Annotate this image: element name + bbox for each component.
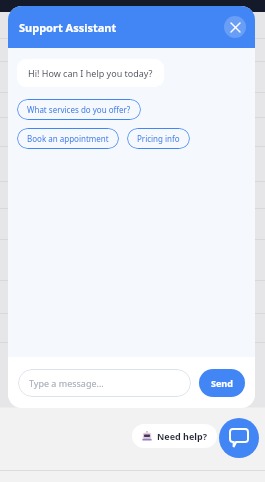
button[interactable]: Close (224, 16, 246, 38)
button[interactable]: Book an appointment (17, 128, 119, 149)
staticText: Type a message... (29, 377, 104, 389)
staticText: What services do you offer? (27, 104, 131, 115)
button[interactable]: Pricing info (127, 128, 190, 149)
button[interactable]: Need help? (132, 424, 217, 448)
staticText: Hi! How can I help you today? (28, 67, 153, 79)
button[interactable]: Send (199, 369, 245, 397)
staticText: Pricing info (137, 133, 180, 144)
button[interactable]: Open chat (219, 418, 259, 458)
button[interactable]: Type a message... (18, 369, 191, 397)
staticText: Support Assistant (19, 20, 117, 35)
staticText: Send (211, 377, 233, 389)
staticText: Need help? (157, 430, 207, 442)
button[interactable]: What services do you offer? (17, 99, 141, 120)
staticText: Book an appointment (27, 133, 109, 144)
